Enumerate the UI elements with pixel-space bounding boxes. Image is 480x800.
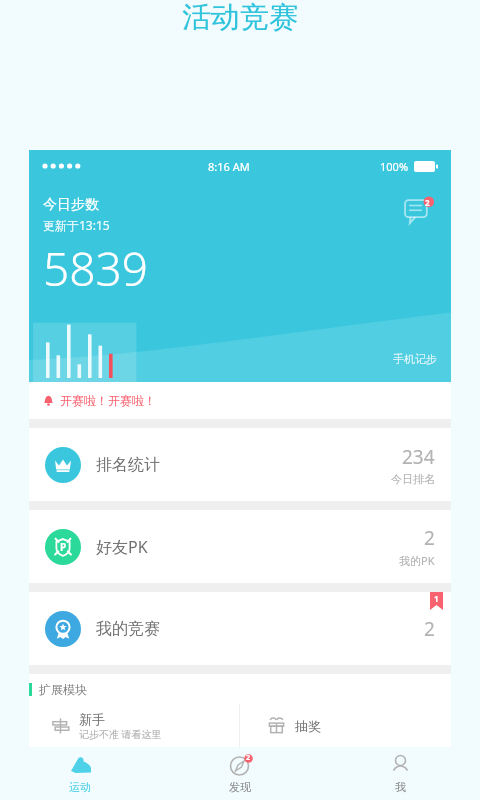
button[interactable]: 我的竞赛 [29, 592, 451, 665]
staticText: 2 [424, 616, 435, 642]
button[interactable]: 8:16 AM [29, 150, 451, 382]
staticText: P [60, 540, 67, 554]
staticText: 8:16 AM [208, 159, 250, 174]
staticText: 2 [424, 525, 435, 551]
staticText: 2 [425, 197, 430, 208]
button[interactable]: 排名统计 [29, 428, 451, 501]
staticText: 记步不准 请看这里 [79, 727, 162, 741]
staticText: 100% [380, 159, 409, 174]
button[interactable]: 运动 [0, 747, 160, 800]
staticText: 手机记步 [393, 352, 437, 366]
button[interactable]: 2 [160, 747, 320, 800]
staticText: 好友PK [96, 536, 148, 558]
staticText: 扩展模块 [39, 682, 87, 697]
button[interactable]: 开赛啦！开赛啦！ [29, 382, 451, 419]
staticText: 今日步数 [43, 196, 99, 214]
staticText: 我的PK [399, 553, 435, 568]
button[interactable]: 我 [320, 747, 480, 800]
staticText: 5839 [43, 237, 149, 300]
staticText: 新手 [79, 711, 105, 727]
button[interactable]: 新手 [29, 704, 239, 747]
button[interactable]: 抽奖 [240, 704, 451, 747]
staticText: 活动竞赛 [182, 0, 298, 36]
button[interactable]: P [29, 510, 451, 583]
staticText: 抽奖 [295, 718, 321, 734]
staticText: 2 [246, 753, 251, 763]
staticText: 运动 [69, 780, 91, 794]
staticText: 开赛啦！开赛啦！ [60, 393, 156, 408]
staticText: 更新于13:15 [43, 217, 110, 233]
button[interactable]: Messages [403, 196, 437, 230]
staticText: 234 [402, 444, 435, 470]
staticText: 今日排名 [391, 472, 435, 486]
staticText: 1 [434, 593, 439, 604]
staticText: 我的竞赛 [96, 619, 160, 639]
staticText: 排名统计 [96, 455, 160, 475]
staticText: 发现 [229, 780, 251, 794]
staticText: 我 [395, 780, 406, 794]
